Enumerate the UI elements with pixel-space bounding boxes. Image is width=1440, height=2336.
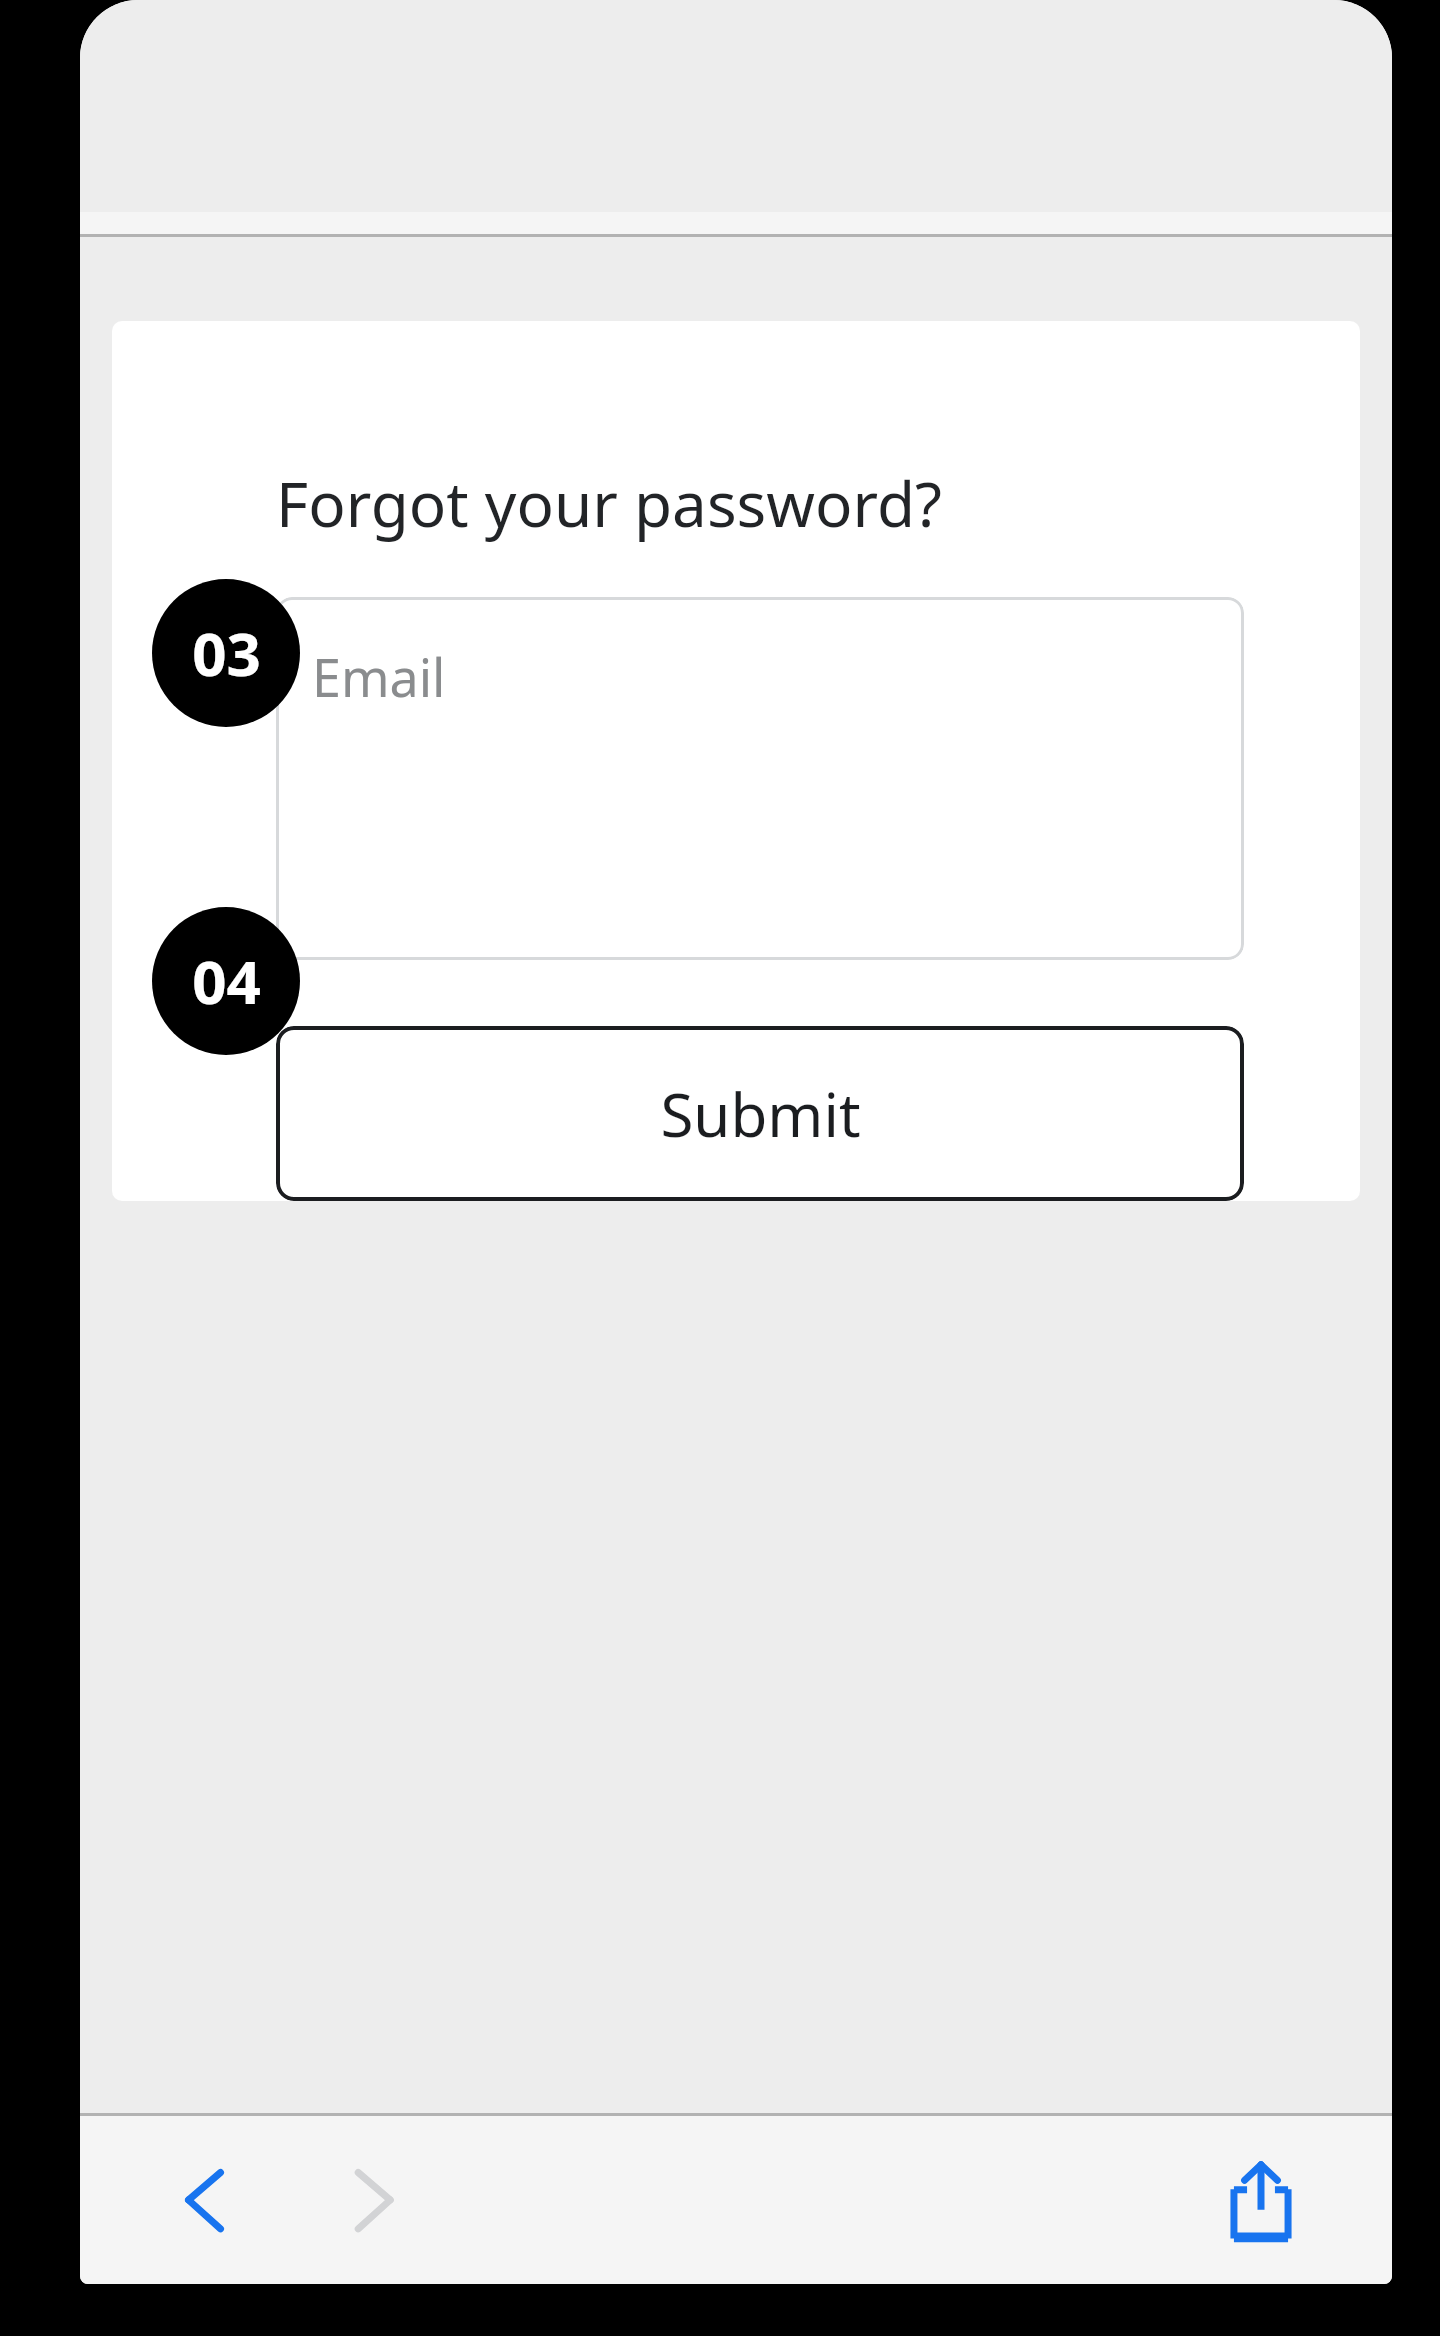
button[interactable]: Share <box>1196 2135 1326 2265</box>
button[interactable]: Email <box>276 597 1244 960</box>
button[interactable]: Submit <box>276 1026 1244 1201</box>
staticText: 03 <box>192 612 261 694</box>
button[interactable]: Back <box>154 2145 264 2255</box>
button[interactable]: 04 <box>152 907 300 1055</box>
staticText: Forgot your password? <box>276 461 942 545</box>
staticText: 04 <box>192 940 261 1022</box>
button[interactable]: Forward <box>316 2145 426 2255</box>
staticText: Submit <box>660 1073 861 1155</box>
staticText: Email <box>312 641 446 712</box>
button[interactable]: 03 <box>152 579 300 727</box>
